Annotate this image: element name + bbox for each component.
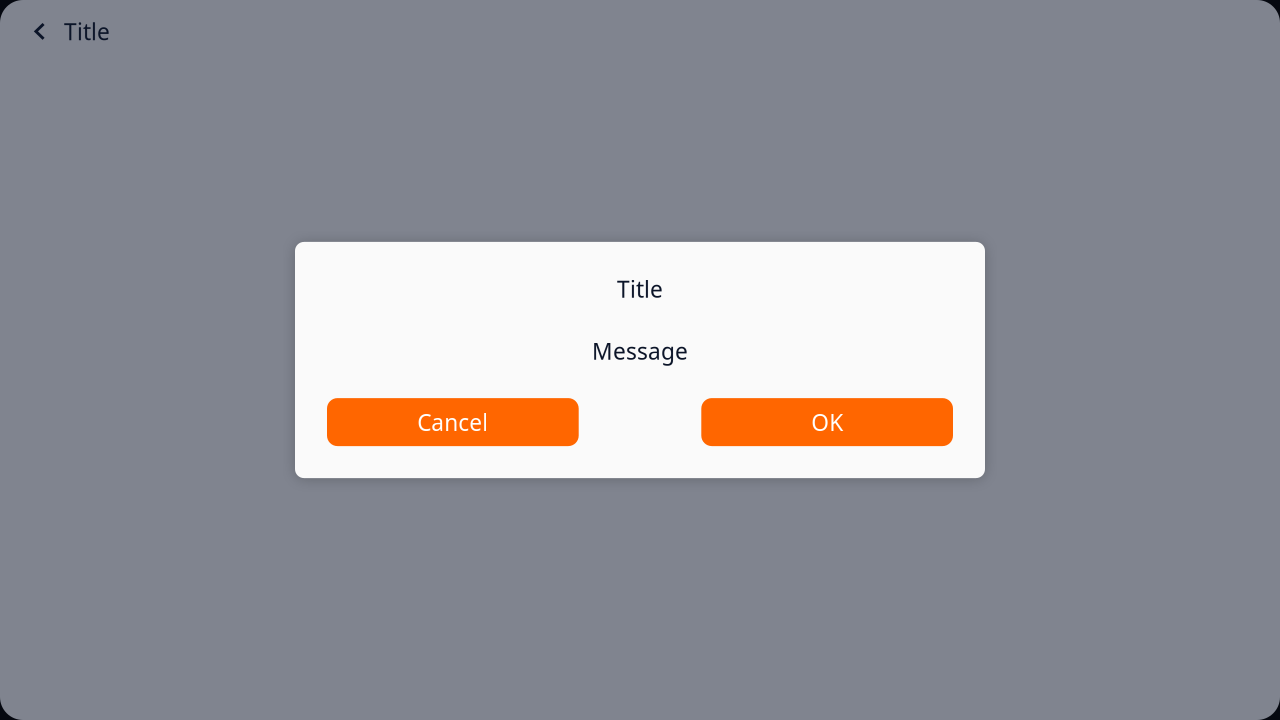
staticText: Title bbox=[617, 274, 663, 304]
staticText: Cancel bbox=[417, 407, 488, 437]
staticText: Message bbox=[592, 336, 688, 366]
button[interactable]: OK bbox=[701, 398, 953, 446]
button[interactable]: Cancel bbox=[327, 398, 579, 446]
staticText: OK bbox=[811, 407, 843, 437]
staticText: Title bbox=[64, 16, 110, 46]
button[interactable]: Back bbox=[25, 9, 55, 53]
